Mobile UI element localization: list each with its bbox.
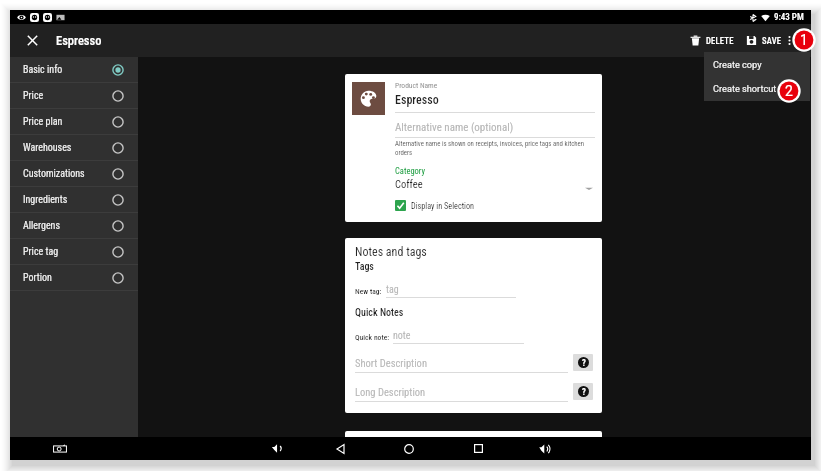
staticText: DELETE — [706, 36, 734, 46]
button[interactable]: Create shortcut — [704, 76, 810, 101]
button[interactable]: Warehouses — [10, 135, 138, 160]
staticText: Quick note: — [355, 333, 390, 342]
staticText: 1 — [800, 32, 808, 48]
staticText: Alternative name is shown on receipts, i… — [395, 140, 595, 156]
staticText: Create copy — [713, 59, 762, 70]
staticText: Tags — [355, 261, 374, 273]
staticText: ? — [582, 387, 586, 397]
staticText: Price plan — [23, 116, 63, 128]
staticText: Customizations — [23, 168, 85, 180]
staticText: Short Description — [355, 357, 427, 369]
button[interactable]: Help — [573, 383, 593, 400]
staticText: Allergens — [23, 220, 61, 232]
staticText: Price — [23, 90, 44, 102]
staticText: Espresso — [56, 33, 102, 48]
staticText: Long Description — [355, 386, 426, 398]
button[interactable]: Help — [573, 354, 593, 371]
button[interactable]: Price tag — [10, 239, 138, 264]
button[interactable]: Volume down — [265, 437, 287, 460]
button[interactable]: Volume up — [534, 437, 556, 460]
button[interactable]: Recents — [467, 437, 489, 460]
staticText: Basic info — [23, 64, 63, 76]
button[interactable]: Back — [330, 437, 352, 460]
button[interactable]: Portion — [10, 265, 138, 290]
button[interactable]: Price — [10, 83, 138, 108]
button[interactable]: SAVE — [740, 24, 788, 57]
button[interactable]: Customizations — [10, 161, 138, 186]
staticText: 2 — [785, 83, 793, 99]
staticText: Ingredients — [23, 194, 68, 206]
button[interactable]: Home — [398, 437, 420, 460]
button[interactable]: More options — [778, 24, 800, 57]
staticText: Coffee — [395, 178, 423, 190]
staticText: SAVE — [762, 36, 782, 46]
staticText: tag — [386, 284, 399, 296]
button[interactable]: Ingredients — [10, 187, 138, 212]
staticText: ? — [582, 358, 586, 368]
staticText: New tag: — [355, 287, 382, 296]
button[interactable]: DELETE — [684, 24, 740, 57]
staticText: Price tag — [23, 246, 59, 258]
button[interactable]: Price plan — [10, 109, 138, 134]
staticText: note — [393, 330, 411, 342]
staticText: Display in Selection — [411, 201, 475, 211]
staticText: Create shortcut — [713, 83, 777, 94]
staticText: Portion — [23, 272, 52, 284]
button[interactable]: Close — [19, 24, 45, 57]
button[interactable]: Screenshot — [49, 437, 71, 460]
staticText: Quick Notes — [355, 307, 404, 319]
button[interactable]: Create copy — [704, 52, 810, 76]
staticText: Espresso — [395, 93, 439, 107]
staticText: Warehouses — [23, 142, 72, 154]
staticText: 9:43 PM — [774, 12, 804, 23]
button[interactable]: Basic info — [10, 57, 138, 82]
staticText: Product Name — [395, 81, 438, 90]
staticText: Alternative name (optional) — [395, 121, 514, 134]
staticText: Notes and tags — [355, 245, 427, 259]
button[interactable]: Allergens — [10, 213, 138, 238]
button[interactable]: Display in Selection — [395, 200, 475, 211]
staticText: Category — [395, 166, 426, 176]
